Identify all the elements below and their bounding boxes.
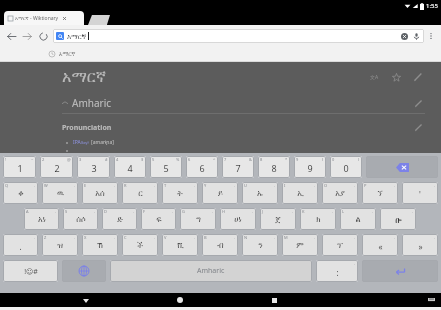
- button[interactable]: Close tab: [61, 15, 68, 22]
- staticText: !☺#: [24, 267, 38, 277]
- button[interactable]: F: [141, 208, 176, 230]
- button[interactable]: አማርኛ - Wiktionary: [4, 11, 84, 25]
- staticText: ል: [355, 216, 361, 224]
- button[interactable]: 5: [150, 156, 182, 178]
- button[interactable]: U: [242, 182, 278, 204]
- button[interactable]: P: [362, 182, 398, 204]
- staticText: .: [354, 261, 356, 266]
- button[interactable]: Change keyboard language: [62, 260, 106, 282]
- button[interactable]: D: [102, 208, 137, 230]
- button[interactable]: Language: [367, 70, 381, 84]
- staticText: Amharic: [72, 96, 112, 110]
- button[interactable]: Edit: [411, 70, 425, 84]
- button[interactable]: .: [402, 182, 438, 204]
- staticText: A: [26, 209, 29, 214]
- button[interactable]: C: [122, 234, 158, 256]
- button[interactable]: H: [220, 208, 256, 230]
- button[interactable]: Home: [173, 293, 187, 307]
- staticText: ፍ: [156, 216, 162, 224]
- button[interactable]: Z: [42, 234, 78, 256]
- button[interactable]: Backspace: [366, 156, 438, 178]
- button[interactable]: Amharic: [110, 260, 312, 282]
- button[interactable]: New tab: [88, 15, 110, 25]
- staticText: 7: [224, 157, 227, 162]
- staticText: ዉ: [57, 190, 64, 198]
- button[interactable]: 6: [186, 156, 218, 178]
- button[interactable]: Clear: [399, 31, 409, 41]
- button[interactable]: I: [282, 182, 318, 204]
- button[interactable]: Y: [202, 182, 238, 204]
- staticText: .: [234, 183, 236, 188]
- button[interactable]: .: [402, 234, 438, 256]
- button[interactable]: W: [42, 182, 78, 204]
- button[interactable]: 8: [258, 156, 290, 178]
- button[interactable]: Back: [3, 28, 19, 44]
- button[interactable]: Hide keyboard: [425, 294, 437, 306]
- button[interactable]: !☺#: [3, 260, 58, 282]
- staticText: አማርኛ - Wiktionary: [15, 15, 59, 22]
- button[interactable]: Edit pronunciation: [412, 121, 425, 134]
- button[interactable]: Edit section: [412, 97, 425, 110]
- staticText: !: [5, 157, 7, 162]
- button[interactable]: Voice search: [411, 31, 421, 41]
- button[interactable]: Watch: [389, 70, 403, 84]
- staticText: 3: [91, 162, 97, 174]
- button[interactable]: J: [260, 208, 296, 230]
- staticText: .: [314, 183, 316, 188]
- button[interactable]: .: [380, 208, 416, 230]
- staticText: O: [324, 183, 328, 188]
- staticText: አማርኛ: [62, 69, 106, 85]
- button[interactable]: 7: [222, 156, 254, 178]
- button[interactable]: .: [322, 234, 358, 256]
- staticText: Pronunciation: [62, 123, 112, 133]
- button[interactable]: R: [122, 182, 158, 204]
- button[interactable]: 9: [294, 156, 326, 178]
- staticText: .: [94, 209, 96, 214]
- button[interactable]: More options: [424, 29, 438, 43]
- button[interactable]: Back: [79, 293, 93, 307]
- staticText: .: [133, 209, 135, 214]
- staticText: 0: [343, 162, 349, 174]
- button[interactable]: አማርኛ: [53, 29, 424, 43]
- button[interactable]: B: [202, 234, 238, 256]
- button[interactable]: X: [82, 234, 118, 256]
- staticText: E: [84, 183, 87, 188]
- staticText: ኢ: [297, 190, 304, 198]
- staticText: .: [234, 235, 236, 240]
- button[interactable]: M: [282, 234, 318, 256]
- staticText: Q: [5, 183, 9, 188]
- button[interactable]: !: [3, 156, 36, 178]
- button[interactable]: Reload: [35, 28, 51, 44]
- staticText: .: [274, 183, 276, 188]
- button[interactable]: 3: [77, 156, 110, 178]
- button[interactable]: 2: [40, 156, 73, 178]
- button[interactable]: .: [3, 234, 38, 256]
- staticText: «: [378, 241, 383, 252]
- button[interactable]: V: [162, 234, 198, 256]
- button[interactable]: 0: [330, 156, 362, 178]
- staticText: ም: [296, 242, 304, 250]
- button[interactable]: Enter: [362, 260, 438, 282]
- button[interactable]: Q: [3, 182, 38, 204]
- button[interactable]: Recent apps: [267, 293, 281, 307]
- staticText: ': [419, 189, 421, 200]
- staticText: IPA: [73, 139, 81, 146]
- button[interactable]: L: [340, 208, 376, 230]
- button[interactable]: E: [82, 182, 118, 204]
- staticText: 5: [152, 157, 155, 162]
- staticText: .: [252, 209, 254, 214]
- button[interactable]: N: [242, 234, 278, 256]
- button[interactable]: Forward: [19, 28, 35, 44]
- button[interactable]: S: [63, 208, 98, 230]
- button[interactable]: .: [362, 234, 398, 256]
- staticText: L: [342, 209, 345, 214]
- button[interactable]: 4: [114, 156, 146, 178]
- button[interactable]: O: [322, 182, 358, 204]
- button[interactable]: K: [300, 208, 336, 230]
- button[interactable]: G: [180, 208, 216, 230]
- button[interactable]: አማርኛ: [0, 47, 441, 61]
- button[interactable]: T: [162, 182, 198, 204]
- staticText: ኡ: [257, 190, 263, 198]
- button[interactable]: A: [24, 208, 59, 230]
- button[interactable]: .: [316, 260, 358, 282]
